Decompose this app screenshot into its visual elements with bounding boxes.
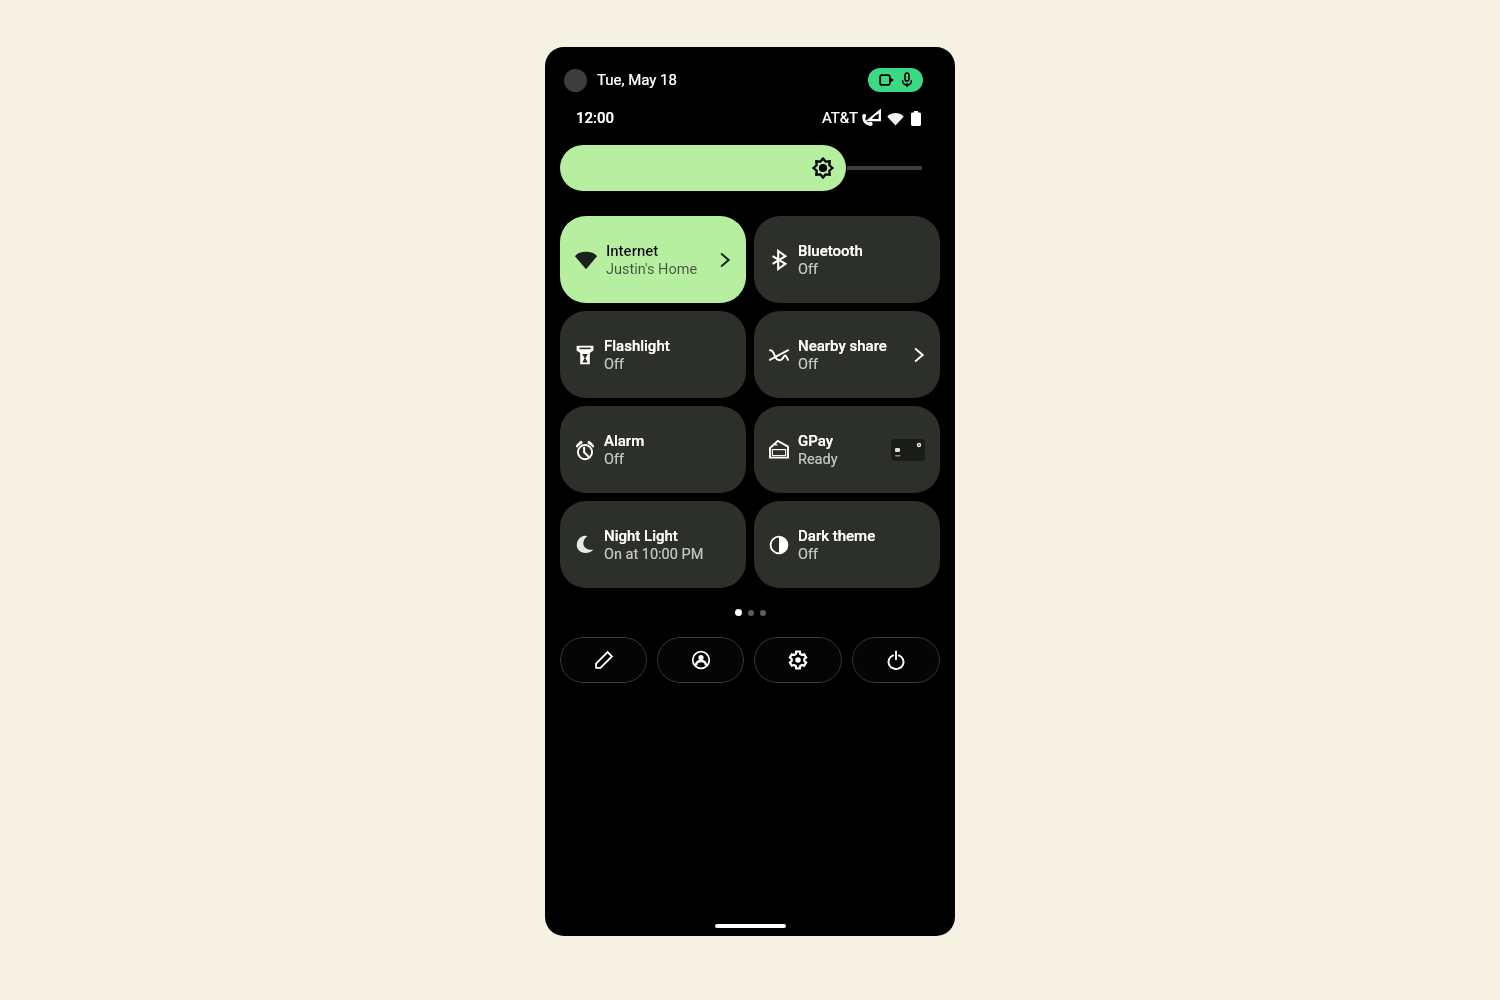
- button[interactable]: GPay: [754, 406, 940, 493]
- button[interactable]: User: [657, 637, 744, 683]
- button[interactable]: Camera and microphone in use: [868, 68, 923, 92]
- staticText: 12:00: [576, 109, 615, 127]
- staticText: Off: [604, 356, 625, 373]
- button[interactable]: Dark theme: [754, 501, 940, 588]
- staticText: Ready: [798, 451, 838, 468]
- button[interactable]: Bluetooth: [754, 216, 940, 303]
- button[interactable]: Settings: [754, 637, 842, 683]
- staticText: Off: [604, 451, 625, 468]
- staticText: Internet: [606, 242, 659, 260]
- button[interactable]: Account: [564, 69, 587, 92]
- button[interactable]: Edit tiles: [560, 637, 647, 683]
- button[interactable]: Alarm: [560, 406, 746, 493]
- staticText: Nearby share: [798, 337, 887, 355]
- staticText: Off: [798, 261, 819, 278]
- staticText: Night Light: [604, 527, 678, 545]
- staticText: Flashlight: [604, 337, 670, 355]
- button[interactable]: Brightness: [560, 145, 922, 191]
- staticText: Off: [798, 356, 819, 373]
- button[interactable]: Nearby share: [754, 311, 940, 398]
- staticText: AT&T: [822, 109, 859, 127]
- staticText: Off: [798, 546, 819, 563]
- staticText: Alarm: [604, 432, 645, 450]
- staticText: Bluetooth: [798, 242, 863, 260]
- staticText: On at 10:00 PM: [604, 546, 704, 563]
- button[interactable]: Flashlight: [560, 311, 746, 398]
- staticText: Justin's Home: [606, 261, 698, 278]
- button[interactable]: Night Light: [560, 501, 746, 588]
- staticText: Tue, May 18: [597, 71, 677, 89]
- staticText: Dark theme: [798, 527, 876, 545]
- button[interactable]: Internet: [560, 216, 746, 303]
- button[interactable]: Power: [852, 637, 940, 683]
- staticText: GPay: [798, 432, 834, 450]
